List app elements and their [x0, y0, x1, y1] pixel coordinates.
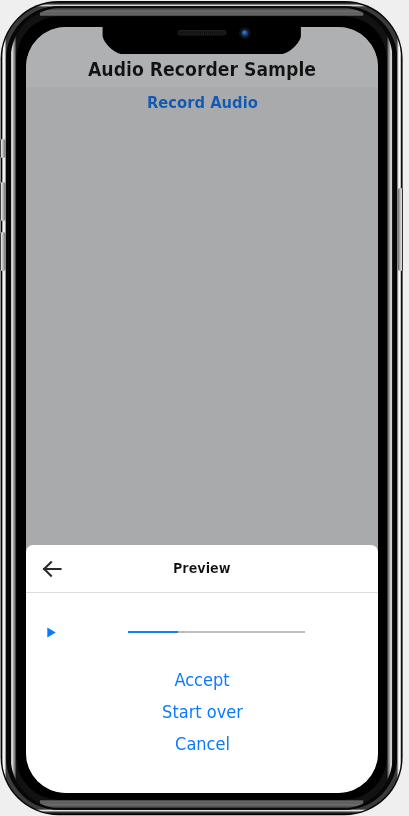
button[interactable]: Start over [26, 695, 378, 727]
button[interactable]: Play [40, 621, 62, 643]
button[interactable]: Record Audio [147, 87, 258, 112]
staticText: Audio Recorder Sample [88, 58, 317, 80]
staticText: Cancel [175, 733, 230, 754]
button[interactable]: Accept [26, 663, 378, 695]
staticText: Preview [173, 560, 231, 577]
staticText: Start over [162, 701, 243, 722]
button[interactable]: Back [32, 549, 72, 589]
staticText: Accept [174, 669, 230, 690]
button[interactable]: Cancel [26, 727, 378, 759]
